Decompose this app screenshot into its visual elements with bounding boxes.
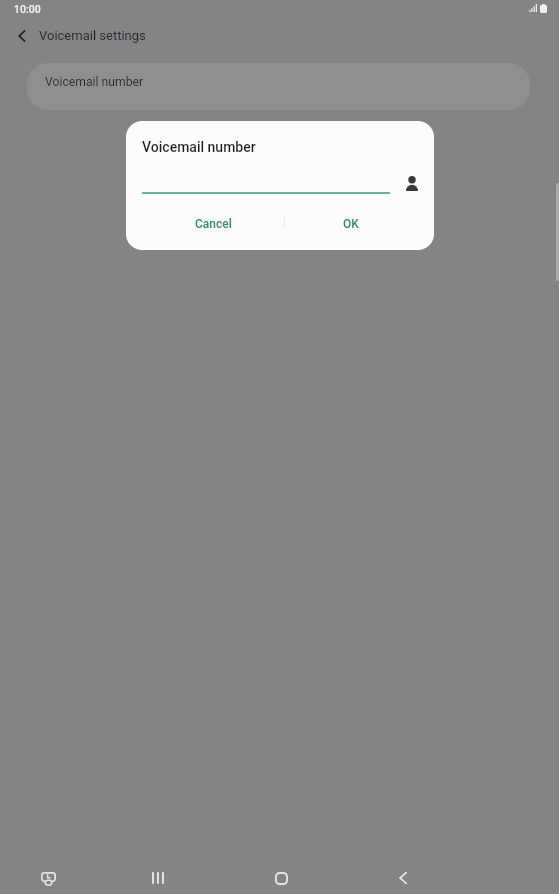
button[interactable]: Recent apps — [136, 856, 180, 894]
button[interactable]: Navigate up — [8, 22, 36, 50]
staticText: OK — [343, 217, 359, 231]
button[interactable]: Home — [259, 856, 303, 894]
staticText: 10:00 — [14, 3, 41, 15]
staticText: Voicemail settings — [39, 28, 146, 43]
button[interactable]: Show keyboard — [26, 856, 70, 894]
button[interactable]: Choose contact — [397, 168, 427, 198]
button[interactable]: Cancel — [142, 211, 284, 249]
button[interactable]: OK — [285, 211, 417, 249]
button[interactable]: Back — [381, 856, 425, 894]
staticText: Voicemail number — [45, 75, 144, 89]
staticText: Voicemail number — [142, 139, 256, 155]
staticText: Cancel — [195, 217, 232, 231]
button[interactable]: Voicemail number — [27, 63, 530, 110]
